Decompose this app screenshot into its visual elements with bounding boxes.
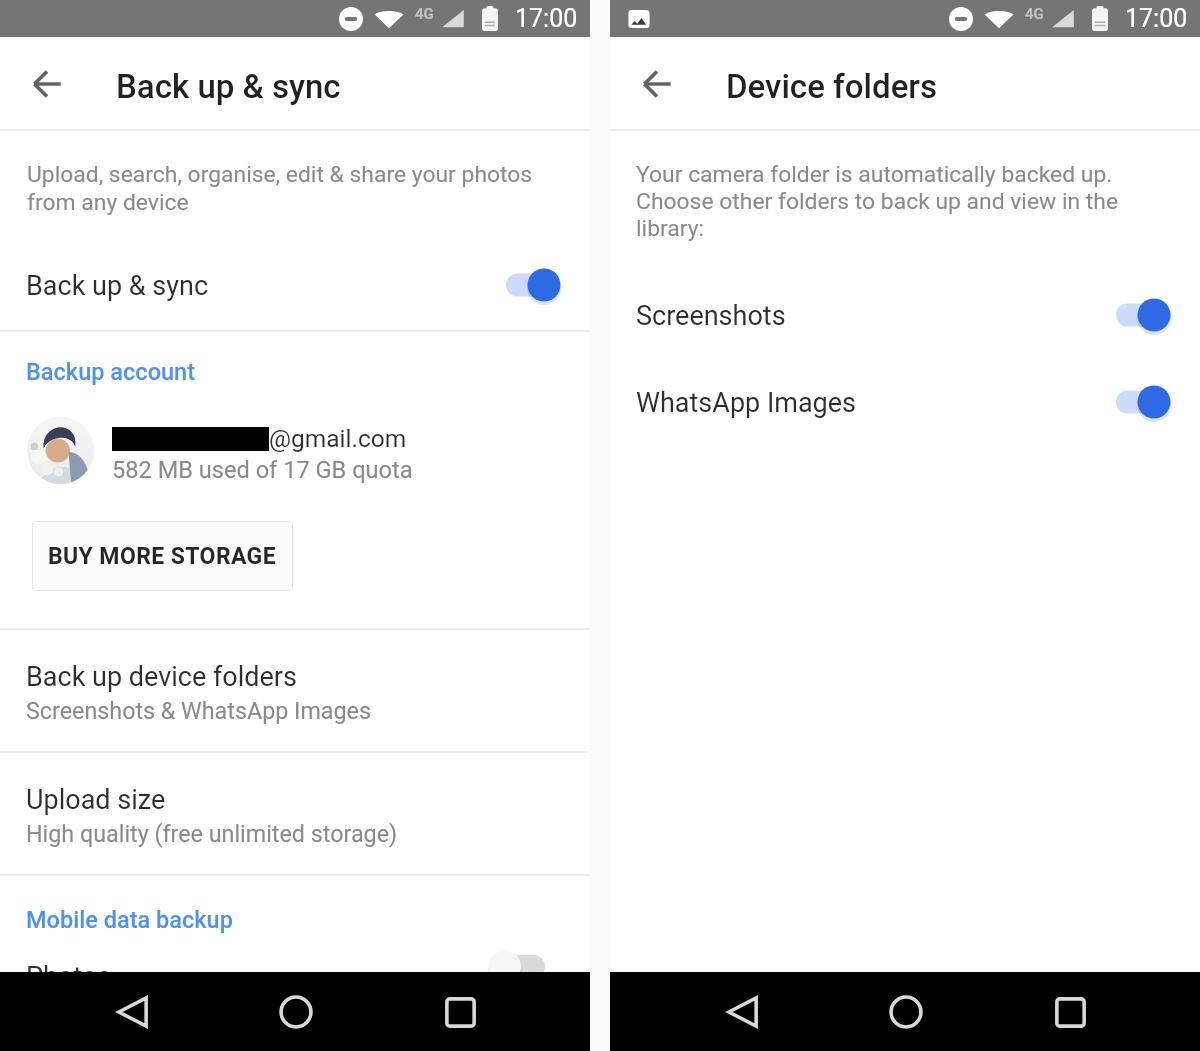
staticText: 582 MB used of 17 GB quota: [112, 456, 413, 484]
staticText: Device folders: [726, 67, 937, 106]
staticText: Back up & sync: [26, 270, 209, 302]
button[interactable]: Upload size: [0, 753, 590, 874]
staticText: Photos: [26, 961, 112, 972]
staticText: 4G: [415, 5, 434, 23]
staticText: Upload size: [26, 784, 166, 816]
button[interactable]: Back: [714, 984, 770, 1040]
button[interactable]: Home: [878, 984, 934, 1040]
staticText: 17:00: [515, 4, 578, 33]
button[interactable]: Back up & sync: [0, 255, 590, 317]
button[interactable]: WhatsApp Images toggle: [1113, 385, 1169, 421]
button[interactable]: Back: [629, 56, 685, 112]
staticText: Upload, search, organise, edit & share y…: [27, 161, 533, 215]
button[interactable]: BUY MORE STORAGE: [32, 521, 293, 591]
button[interactable]: Back up device folders: [0, 630, 590, 751]
button[interactable]: Recent apps: [432, 984, 488, 1040]
staticText: @gmail.com: [269, 424, 407, 453]
staticText: Screenshots & WhatsApp Images: [26, 697, 371, 724]
button[interactable]: Backup account: [0, 358, 590, 386]
button[interactable]: Screenshots: [610, 286, 1200, 346]
button[interactable]: Mobile data backup: [0, 906, 590, 934]
staticText: Screenshots: [636, 300, 786, 332]
staticText: Back up & sync: [116, 67, 341, 106]
button[interactable]: Recent apps: [1042, 984, 1098, 1040]
staticText: WhatsApp Images: [636, 387, 857, 419]
button[interactable]: Back up & sync toggle: [503, 268, 559, 304]
button[interactable]: WhatsApp Images: [610, 373, 1200, 433]
button[interactable]: Home: [268, 984, 324, 1040]
staticText: Back up device folders: [26, 661, 297, 693]
staticText: 17:00: [1125, 4, 1188, 33]
button[interactable]: Back: [104, 984, 160, 1040]
staticText: High quality (free unlimited storage): [26, 820, 398, 847]
staticText: Your camera folder is automatically back…: [636, 161, 1119, 242]
button[interactable]: Back: [19, 56, 75, 112]
button[interactable]: @gmail.com: [0, 417, 590, 484]
button[interactable]: Screenshots toggle: [1113, 298, 1169, 334]
button[interactable]: Photos mobile data backup toggle: [489, 961, 545, 972]
staticText: BUY MORE STORAGE: [48, 543, 277, 570]
button[interactable]: Photos: [0, 961, 590, 972]
staticText: 4G: [1025, 5, 1044, 23]
